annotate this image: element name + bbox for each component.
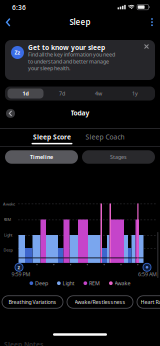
staticText: Today [70,109,89,117]
staticText: Light [62,280,74,287]
staticText: Sleep Notes [4,340,43,346]
staticText: 4w [95,90,102,97]
staticText: 1y [132,90,138,97]
staticText: Find all the key information you need [28,51,115,58]
button[interactable]: 7d [44,87,80,99]
staticText: Sleep Score [33,133,71,141]
staticText: z [17,264,20,271]
staticText: Heart Rate [140,298,160,306]
staticText: your sleep health. [28,65,70,72]
staticText: Breathing Variations [8,298,56,306]
staticText: Sleep [69,17,90,27]
staticText: Light [4,232,12,238]
staticText: Get to know your sleep [28,43,105,52]
staticText: REM [3,217,11,222]
button[interactable]: Breathing Variations [2,296,63,308]
staticText: Stages [110,153,127,161]
button[interactable]: 1y [117,87,153,99]
staticText: 9:59 PM [11,271,30,278]
staticText: to understand and better manage [28,58,109,65]
staticText: 7d [59,90,65,97]
staticText: 6:36 [12,3,26,12]
staticText: Timeline [30,153,53,161]
staticText: Deep [35,280,48,287]
button[interactable]: Heart Rate [137,296,160,308]
button[interactable]: Previous day [5,108,16,119]
staticText: Sleep Coach [85,133,124,141]
button[interactable]: Dismiss [141,41,151,51]
button[interactable]: Zz [5,40,155,80]
button[interactable]: Awake/Restlessness [67,296,133,308]
button[interactable]: Sleep Coach [80,131,130,143]
staticText: Zz [14,49,20,56]
staticText: REM [89,280,100,287]
button[interactable]: More options [147,15,157,29]
staticText: Deep [3,247,12,253]
button[interactable]: Sleep Score [27,131,77,143]
button[interactable]: 1d [7,88,43,98]
button[interactable]: Back [2,15,14,29]
staticText: 6:59 AM [138,271,157,278]
staticText: Awake [114,280,130,287]
button[interactable]: Stages [82,150,155,164]
staticText: 1d [22,90,28,97]
staticText: Awake/Restlessness [74,298,125,306]
button[interactable]: Timeline [5,150,78,164]
staticText: Awake [3,201,15,207]
button[interactable]: 4w [80,87,116,99]
